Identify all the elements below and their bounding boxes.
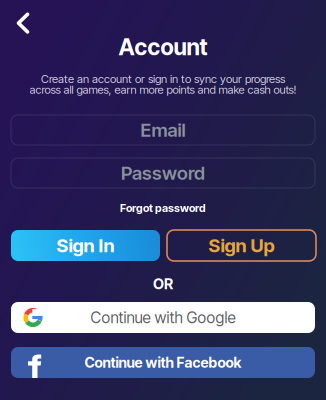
button[interactable]: Continue with Google: [11, 302, 315, 333]
button[interactable]: Continue with Facebook: [11, 347, 315, 378]
button[interactable]: Sign Up: [167, 230, 316, 261]
staticText: Sign In: [56, 234, 114, 257]
button[interactable]: Back: [3, 4, 43, 42]
staticText: Forgot password: [120, 201, 206, 215]
staticText: OR: [153, 275, 173, 293]
staticText: Password: [121, 162, 205, 184]
staticText: Create an account or sign in to sync you…: [41, 72, 285, 86]
staticText: Continue with Google: [90, 308, 235, 327]
staticText: Account: [118, 33, 207, 61]
staticText: Continue with Facebook: [84, 354, 241, 371]
button[interactable]: Forgot password: [0, 200, 326, 216]
staticText: Sign Up: [208, 234, 274, 257]
button[interactable]: Sign In: [11, 230, 160, 261]
staticText: Email: [140, 119, 185, 141]
button[interactable]: Password: [11, 158, 315, 188]
staticText: across all games, earn more points and m…: [29, 83, 296, 96]
button[interactable]: Email: [11, 115, 315, 145]
